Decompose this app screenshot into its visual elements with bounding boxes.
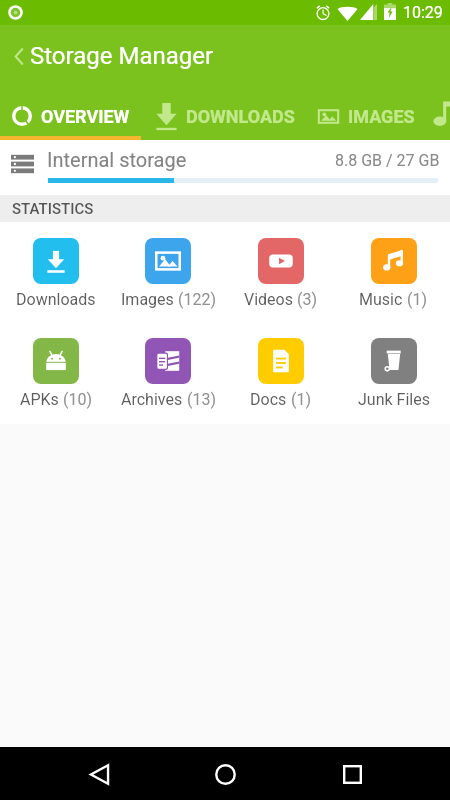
button[interactable]: OVERVIEW (0, 92, 141, 140)
staticText: IMAGES (348, 106, 415, 127)
staticText: (10) (59, 390, 92, 409)
staticText: (3) (293, 290, 318, 309)
staticText: STATISTICS (12, 200, 94, 218)
button[interactable]: Back (0, 25, 30, 92)
staticText: Downloads (16, 290, 96, 309)
button[interactable]: Images (112, 238, 224, 309)
button[interactable]: Junk Files (337, 338, 450, 409)
button[interactable]: Archives (112, 338, 224, 409)
staticText: APKs (20, 390, 59, 409)
staticText: Internal storage (47, 148, 187, 171)
staticText: Music (359, 290, 403, 309)
staticText: Archives (121, 390, 183, 409)
staticText: Junk Files (358, 390, 430, 409)
button[interactable]: Home (180, 748, 270, 800)
button[interactable]: Back (0, 25, 450, 92)
staticText: Videos (244, 290, 293, 309)
button[interactable]: IMAGES (309, 92, 423, 140)
button[interactable]: Music (337, 238, 450, 309)
staticText: OVERVIEW (41, 106, 130, 127)
button[interactable]: Recents (307, 748, 397, 800)
staticText: 8.8 GB / 27 GB (335, 151, 440, 170)
staticText: DOWNLOADS (186, 106, 295, 127)
staticText: (13) (183, 390, 216, 409)
staticText: (1) (403, 290, 428, 309)
staticText: Docs (250, 390, 287, 409)
staticText: (122) (174, 290, 216, 309)
staticText: Storage Manager (30, 42, 214, 70)
button[interactable]: Music (423, 92, 450, 140)
staticText: 10:29 (403, 3, 443, 22)
button[interactable]: Docs (224, 338, 337, 409)
staticText: (1) (287, 390, 312, 409)
staticText: Images (121, 290, 174, 309)
button[interactable]: Back (54, 748, 144, 800)
button[interactable]: Downloads (0, 238, 112, 309)
button[interactable]: Videos (224, 238, 337, 309)
button[interactable]: APKs (0, 338, 112, 409)
button[interactable]: DOWNLOADS (141, 92, 309, 140)
